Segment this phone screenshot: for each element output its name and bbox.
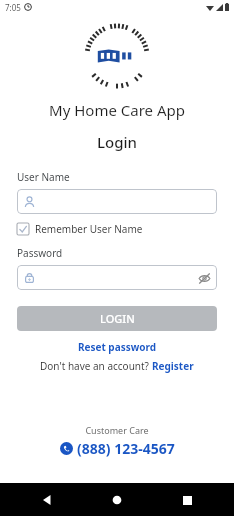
- staticText: LOGIN: [100, 311, 135, 326]
- button[interactable]: LOGIN: [17, 306, 217, 331]
- staticText: Customer Care: [0, 424, 234, 436]
- staticText: Don't have an account?: [40, 359, 152, 373]
- staticText: Remember User Name: [35, 222, 143, 236]
- button[interactable]: [17, 189, 217, 214]
- button[interactable]: Register: [152, 359, 194, 373]
- button[interactable]: (888) 123-4567: [0, 439, 234, 458]
- staticText: (888) 123-4567: [77, 439, 175, 458]
- staticText: Password: [17, 246, 63, 260]
- staticText: 7:05: [5, 2, 21, 13]
- button[interactable]: Show password: [17, 265, 217, 290]
- button[interactable]: Recent apps: [174, 487, 200, 513]
- button[interactable]: Home: [104, 487, 130, 513]
- staticText: Login: [0, 132, 234, 152]
- button[interactable]: Reset password: [17, 340, 217, 354]
- button[interactable]: Back: [34, 487, 60, 513]
- button[interactable]: Remember User Name: [17, 222, 143, 236]
- staticText: My Home Care App: [0, 100, 234, 120]
- staticText: User Name: [17, 170, 70, 184]
- button[interactable]: Show password: [196, 270, 212, 286]
